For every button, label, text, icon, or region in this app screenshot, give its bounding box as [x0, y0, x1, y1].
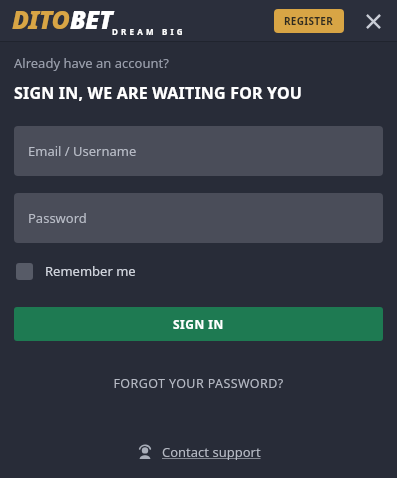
staticText: Contact support	[162, 443, 261, 461]
button[interactable]: Password	[14, 193, 383, 243]
button[interactable]: SIGN IN	[14, 307, 383, 341]
button[interactable]: Close	[358, 6, 388, 36]
staticText: FORGOT YOUR PASSWORD?	[113, 375, 284, 392]
button[interactable]: FORGOT YOUR PASSWORD?	[14, 369, 383, 398]
staticText: Remember me	[45, 262, 136, 280]
staticText: DITO	[12, 2, 70, 36]
button[interactable]: DitoBet home	[12, 0, 212, 40]
staticText: BET	[70, 2, 113, 36]
staticText: Already have an account?	[14, 54, 169, 72]
button[interactable]: Email / Username	[14, 126, 383, 176]
button[interactable]: REGISTER	[274, 9, 344, 33]
staticText: REGISTER	[284, 14, 334, 28]
button[interactable]: Remember me	[14, 258, 138, 284]
staticText: Email / Username	[28, 142, 137, 160]
staticText: Password	[28, 209, 87, 227]
staticText: SIGN IN	[173, 316, 224, 332]
staticText: DREAM BIG	[112, 26, 186, 37]
staticText: SIGN IN, WE ARE WAITING FOR YOU	[14, 82, 303, 104]
button[interactable]: Contact support	[133, 440, 265, 464]
